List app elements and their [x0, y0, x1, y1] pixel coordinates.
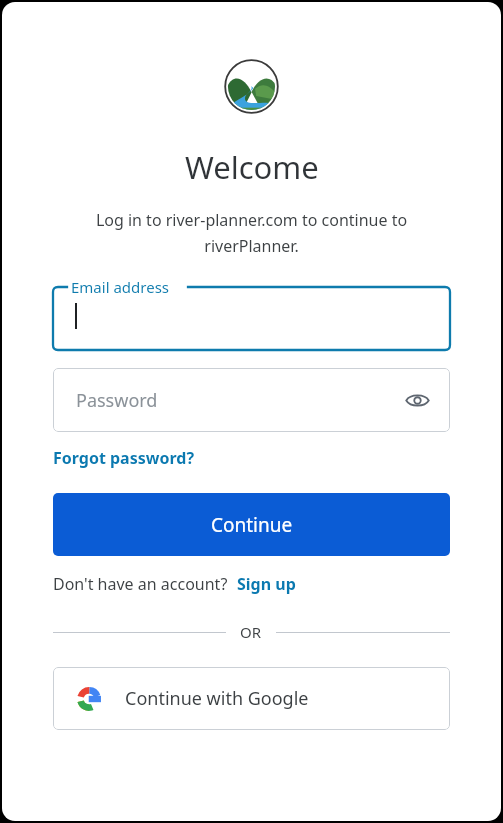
staticText: Don't have an account?	[53, 573, 228, 595]
staticText: Password	[76, 388, 158, 413]
button[interactable]: Password	[53, 368, 450, 432]
button[interactable]: Sign up	[237, 573, 296, 595]
button[interactable]: Show password	[402, 385, 432, 415]
button[interactable]: Continue with Google	[53, 667, 450, 730]
staticText: Continue	[211, 512, 293, 538]
staticText: Continue with Google	[125, 686, 309, 711]
staticText: Sign up	[237, 573, 296, 595]
button[interactable]: Continue	[53, 493, 450, 556]
button[interactable]: Forgot password?	[53, 447, 195, 469]
staticText: Forgot password?	[53, 447, 195, 469]
staticText: Log in to river-planner.com to continue …	[64, 209, 439, 257]
staticText: OR	[240, 622, 262, 642]
staticText: Welcome	[185, 146, 319, 188]
button[interactable]: Email address	[53, 276, 450, 350]
staticText: Email address	[71, 277, 170, 297]
